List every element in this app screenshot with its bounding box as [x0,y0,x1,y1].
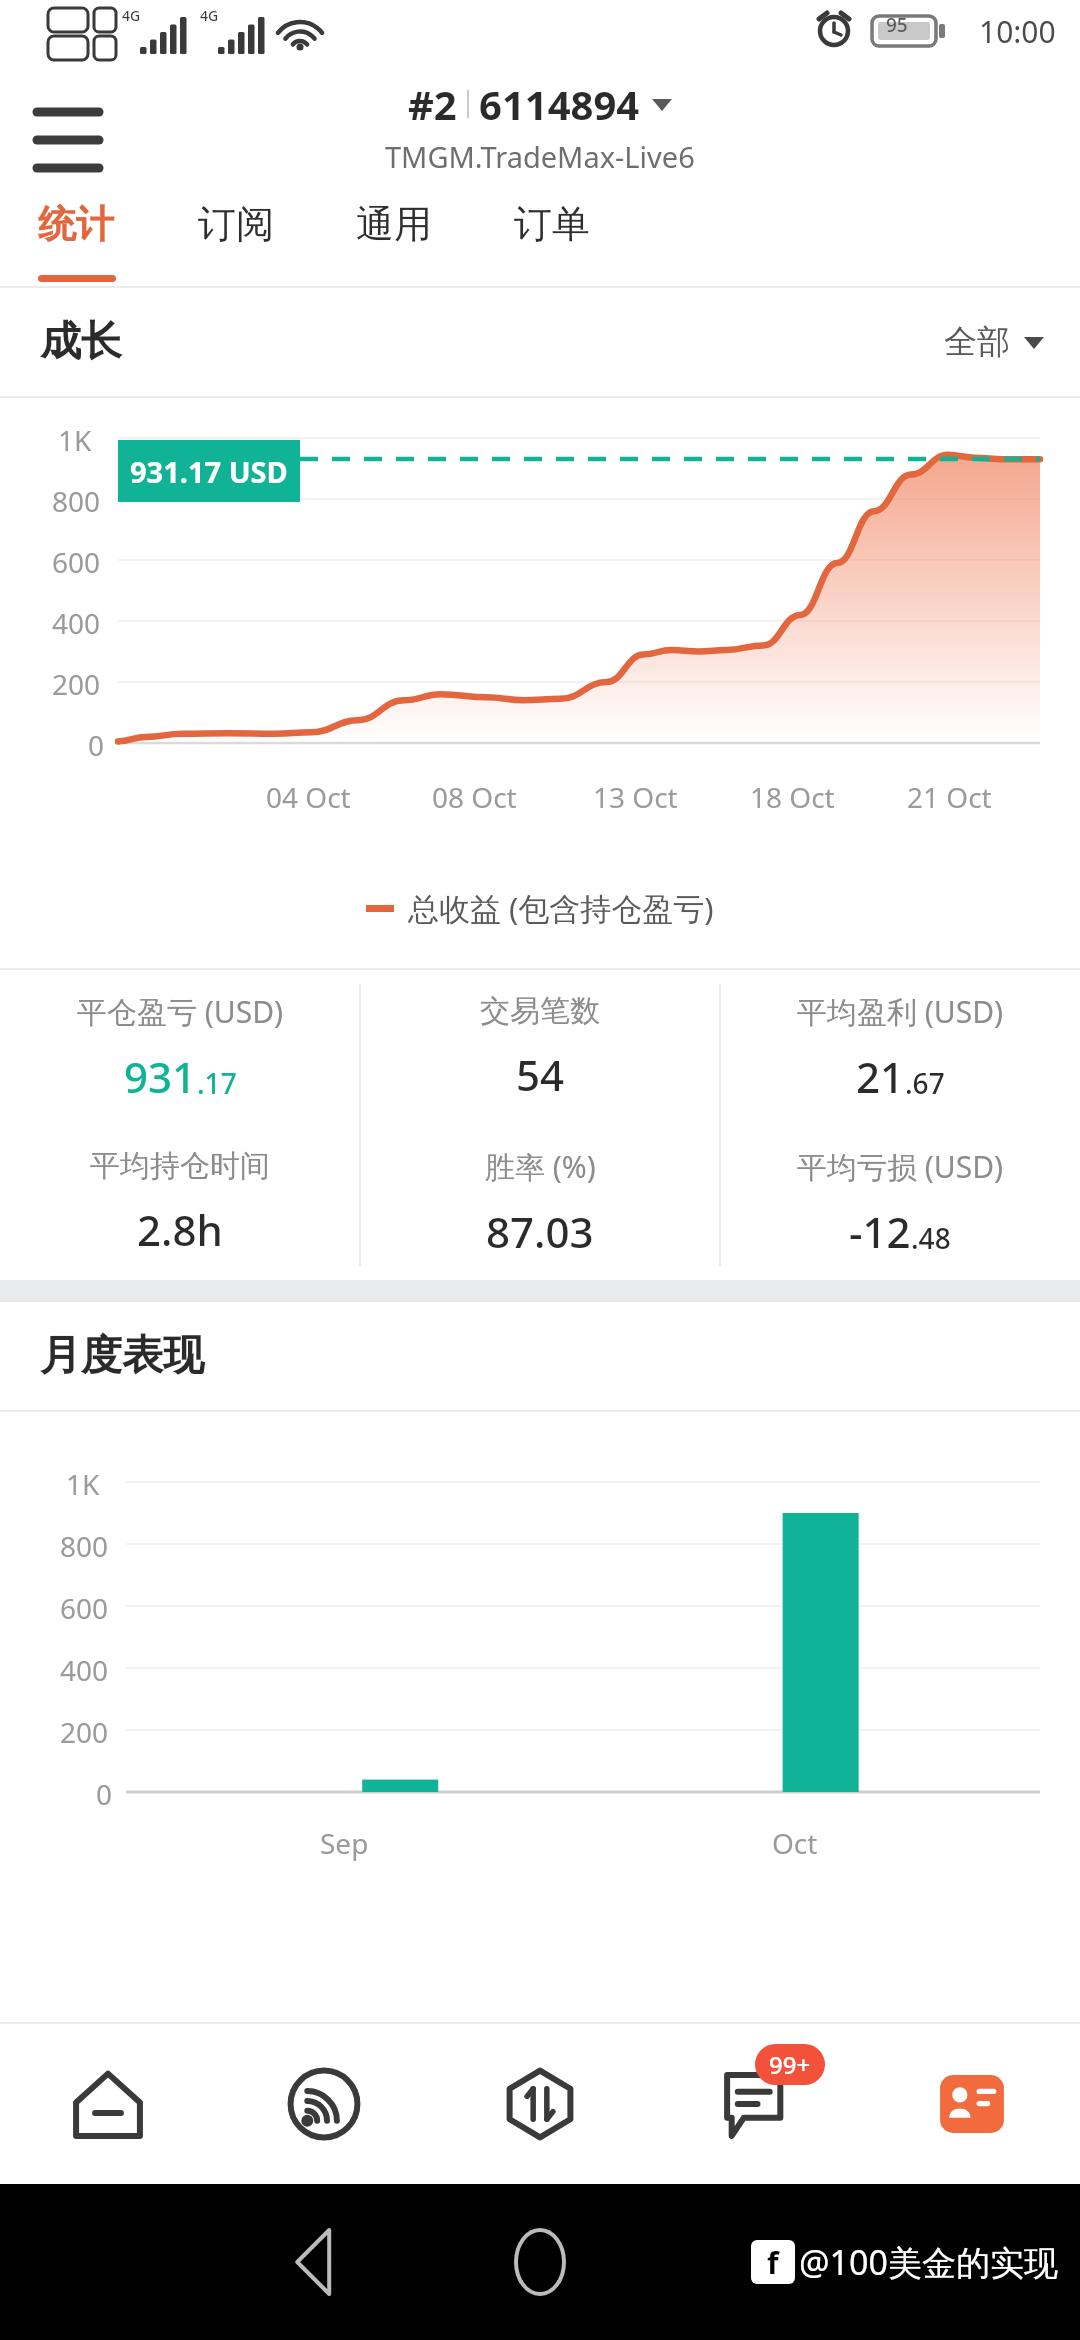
staticText: 18 Oct [750,778,835,816]
staticText: 通用 [356,200,432,248]
staticText: 总收益 (包含持仓盈亏) [408,887,714,929]
staticText: 600 [52,543,101,581]
button[interactable]: 订阅 [198,190,356,286]
staticText: 平仓盈亏 (USD) [77,991,284,1032]
staticText: TMGM.TradeMax-Live6 [385,137,695,176]
staticText: @100美金的实现 [799,2239,1058,2285]
staticText: 平均持仓时间 [90,1147,270,1185]
button[interactable]: Trade [432,2024,648,2184]
button[interactable]: 通用 [356,190,514,286]
staticText: 600 [60,1589,109,1627]
button[interactable]: 订单 [514,190,672,286]
staticText: 月度表现 [40,1330,204,1382]
staticText: 2.8h [137,1201,223,1258]
staticText: 胜率 (%) [485,1146,596,1187]
staticText: #2 [408,77,457,131]
button[interactable]: Profile [864,2024,1080,2184]
staticText: 6114894 [479,77,640,131]
staticText: Sep [320,1824,369,1862]
staticText: 200 [52,665,101,703]
staticText: 800 [60,1527,109,1565]
staticText: .17 [197,1064,237,1102]
staticText: 4G [200,6,219,25]
button[interactable]: Signals [216,2024,432,2184]
staticText: 统计 [38,200,114,248]
staticText: 10:00 [979,11,1056,52]
staticText: 931.17 USD [130,452,288,491]
staticText: 订阅 [198,200,274,248]
staticText: 04 Oct [266,778,351,816]
staticText: 平均盈利 (USD) [797,991,1004,1032]
staticText: 1K [66,1465,100,1503]
staticText: 99+ [769,2048,811,2081]
staticText: 平均亏损 (USD) [797,1146,1004,1187]
staticText: 08 Oct [432,778,517,816]
button[interactable]: 平均持仓时间 [0,1125,360,1280]
button[interactable]: Messages [648,2024,864,2184]
button[interactable]: 交易笔数 [360,970,720,1125]
button[interactable]: Home [0,2024,216,2184]
staticText: 成长 [40,316,122,368]
staticText: 交易笔数 [480,992,600,1030]
staticText: 4G [122,6,141,25]
button[interactable]: 平仓盈亏 (USD) [0,970,360,1125]
button[interactable]: Menu [30,88,106,164]
staticText: 54 [516,1046,565,1103]
staticText: 0 [96,1775,113,1813]
staticText: 1K [58,421,92,459]
staticText: f [767,2242,779,2283]
staticText: Oct [772,1824,818,1862]
staticText: -12 [849,1203,911,1260]
staticText: 931 [124,1048,197,1105]
button[interactable]: 统计 [38,190,198,286]
staticText: .67 [905,1064,945,1102]
button[interactable]: 胜率 (%) [360,1125,720,1280]
button[interactable]: 全部 [944,321,1044,363]
staticText: 21 [856,1048,905,1105]
staticText: 95 [886,12,908,38]
staticText: 400 [52,604,101,642]
staticText: 800 [52,482,101,520]
staticText: 全部 [944,321,1010,363]
staticText: .48 [911,1219,951,1257]
staticText: 21 Oct [907,778,992,816]
staticText: 13 Oct [593,778,678,816]
button[interactable]: 平均盈利 (USD) [720,970,1080,1125]
staticText: 0 [88,726,105,764]
staticText: 200 [60,1713,109,1751]
button[interactable]: 平均亏损 (USD) [720,1125,1080,1280]
staticText: 87.03 [486,1203,594,1260]
staticText: 订单 [514,200,590,248]
staticText: 400 [60,1651,109,1689]
button[interactable]: #2 [385,77,695,176]
